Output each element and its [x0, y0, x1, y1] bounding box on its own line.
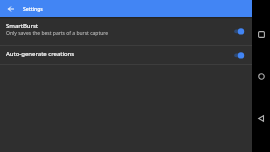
staticText: SmartBurst [6, 22, 39, 30]
button[interactable]: Home [252, 64, 270, 88]
button[interactable]: Toggle setting [230, 49, 244, 62]
button[interactable]: SmartBurst [0, 17, 252, 45]
staticText: Auto-generate creations [6, 50, 75, 58]
button[interactable]: Back [252, 106, 270, 130]
staticText: Settings [23, 6, 43, 13]
button[interactable]: Recent apps [252, 22, 270, 46]
staticText: Only saves the best parts of a burst cap… [6, 30, 109, 37]
button[interactable]: Navigate up [0, 0, 21, 17]
button[interactable]: Auto-generate creations [0, 46, 252, 64]
button[interactable]: Toggle setting [230, 25, 244, 38]
